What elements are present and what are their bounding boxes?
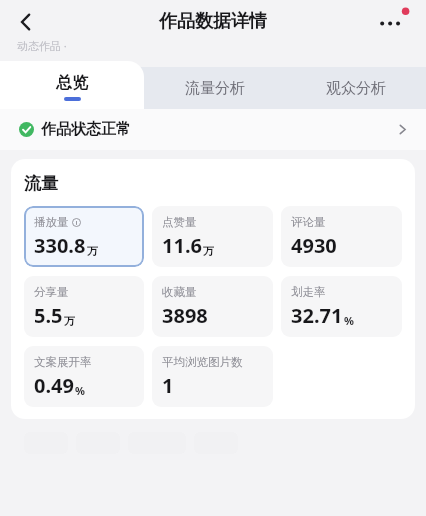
button[interactable]: 观众分析 (285, 67, 426, 109)
staticText: 动态作品 · (17, 38, 67, 52)
staticText: 点赞量 (162, 215, 197, 229)
staticText: 流量 (24, 173, 58, 194)
staticText: 分享量 (34, 285, 69, 299)
button[interactable]: 播放量 (24, 206, 144, 267)
staticText: 330.8 (34, 232, 86, 259)
staticText: 万 (87, 244, 98, 258)
staticText: 32.71 (291, 302, 343, 329)
staticText: 3898 (162, 302, 208, 329)
button[interactable]: 点赞量 (152, 206, 273, 267)
staticText: 流量分析 (185, 79, 245, 98)
button[interactable]: 平均浏览图片数 (152, 346, 273, 407)
staticText: 观众分析 (326, 79, 386, 98)
button[interactable]: 评论量 (281, 206, 402, 267)
staticText: 5.5 (34, 302, 63, 329)
button[interactable]: More options (371, 0, 415, 44)
staticText: 作品状态正常 (41, 120, 131, 139)
staticText: 平均浏览图片数 (162, 355, 243, 369)
staticText: 4930 (291, 232, 337, 259)
staticText: 万 (203, 244, 214, 258)
button[interactable]: Back (6, 2, 46, 42)
button[interactable]: 收藏量 (152, 276, 273, 337)
staticText: 划走率 (291, 285, 326, 299)
staticText: 文案展开率 (34, 355, 92, 369)
button[interactable]: 文案展开率 (24, 346, 144, 407)
staticText: 作品数据详情 (159, 10, 267, 33)
button[interactable]: 流量分析 (144, 67, 285, 109)
button[interactable]: 作品状态正常 (0, 109, 426, 150)
button[interactable]: 分享量 (24, 276, 144, 337)
staticText: 评论量 (291, 215, 326, 229)
staticText: % (75, 383, 85, 398)
staticText: % (344, 313, 354, 328)
staticText: 收藏量 (162, 285, 197, 299)
staticText: 1 (162, 372, 174, 399)
staticText: 11.6 (162, 232, 202, 259)
staticText: 播放量 (34, 215, 69, 229)
staticText: 0.49 (34, 372, 74, 399)
button[interactable]: 总览 (0, 61, 144, 109)
staticText: 万 (64, 314, 75, 328)
button[interactable]: 划走率 (281, 276, 402, 337)
staticText: 总览 (56, 73, 88, 93)
